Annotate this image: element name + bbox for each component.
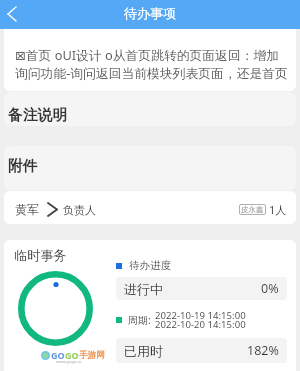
staticText: 2022-10-19 14:15:00 2022-10-20 14:15:00 (155, 309, 246, 331)
staticText: 待办事项 (124, 5, 176, 21)
staticText: 待办进度 (129, 259, 171, 272)
button[interactable]: 进行中 (116, 277, 287, 300)
staticText: 周期: (128, 313, 151, 327)
staticText: 182% (247, 342, 279, 359)
staticText: www.gogo.cn (56, 359, 82, 364)
staticText: 皮永鑫 (241, 205, 264, 214)
staticText: 进行中 (124, 281, 163, 297)
staticText: 1人 (269, 202, 287, 217)
staticText: 备注说明 (8, 106, 68, 125)
staticText: GO (65, 349, 79, 361)
staticText: 临时事务 (14, 247, 67, 264)
staticText: ⊠首页 oUI设计 o从首页跳转的页面返回：增加询问功能-询问返回当前模块列表页… (15, 46, 291, 82)
staticText: 负责人 (63, 203, 96, 217)
staticText: 已用时 (124, 343, 163, 359)
button[interactable]: 黄军 (4, 191, 296, 224)
staticText: 0% (261, 280, 279, 297)
staticText: 附件 (8, 157, 38, 176)
staticText: 手游网 (79, 350, 105, 361)
staticText: GO (51, 349, 65, 361)
button[interactable]: 已用时 (116, 338, 287, 363)
staticText: 黄军 (15, 202, 40, 217)
button[interactable]: Back (0, 0, 26, 29)
